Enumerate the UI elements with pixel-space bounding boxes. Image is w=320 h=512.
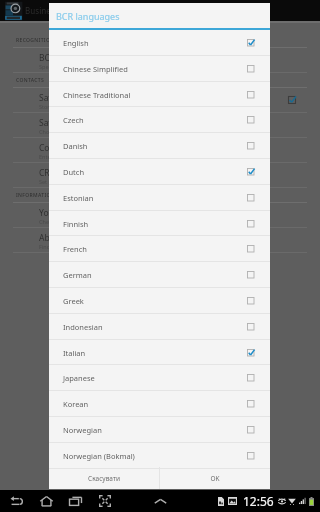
staticText: BCR languages <box>56 10 120 22</box>
staticText: English <box>63 38 247 48</box>
button[interactable]: Show notifications <box>149 490 171 512</box>
staticText: Indonesian <box>63 322 247 332</box>
staticText: Chinese Simplified <box>63 64 247 74</box>
staticText: RECOGNITION <box>16 37 55 44</box>
staticText: Choose when to save images <box>39 128 114 135</box>
button[interactable]: French <box>49 236 270 262</box>
staticText: Czech <box>63 115 247 125</box>
button[interactable]: Contact fields <box>0 138 320 162</box>
staticText: About <box>39 232 64 244</box>
button[interactable]: Recent apps <box>64 490 86 512</box>
staticText: Set up the CRM connection <box>39 178 109 185</box>
button[interactable]: Japanese <box>49 365 270 391</box>
button[interactable]: Greek <box>49 288 270 314</box>
staticText: INFORMATION <box>16 192 56 199</box>
staticText: Store recognized contacts <box>39 103 106 110</box>
staticText: 12:56 <box>243 493 274 509</box>
staticText: Specify recognition languages <box>39 63 117 70</box>
button[interactable]: English <box>49 30 270 56</box>
staticText: BCR languages <box>39 52 99 64</box>
staticText: German <box>63 270 247 280</box>
staticText: Chinese Traditional <box>63 90 247 100</box>
button[interactable]: OK <box>160 467 270 489</box>
staticText: French <box>63 244 247 254</box>
staticText: Greek <box>63 296 247 306</box>
button[interactable]: Estonian <box>49 185 270 211</box>
button[interactable]: Norwegian (Bokmal) <box>49 443 270 469</box>
button[interactable]: Korean <box>49 391 270 417</box>
button[interactable]: CRM settings <box>0 163 320 187</box>
staticText: OK <box>210 474 220 483</box>
button[interactable]: Chinese Traditional <box>49 82 270 108</box>
button[interactable]: Norwegian <box>49 417 270 443</box>
button[interactable]: Save card image <box>0 113 320 137</box>
button[interactable]: Chinese Simplified <box>49 56 270 82</box>
button[interactable]: Danish <box>49 133 270 159</box>
staticText: Norwegian <box>63 425 247 435</box>
button[interactable]: Home <box>35 490 57 512</box>
staticText: Скасувати <box>88 474 120 483</box>
button[interactable]: About <box>0 228 320 252</box>
button[interactable]: Finnish <box>49 211 270 237</box>
staticText: Contact fields <box>39 142 94 154</box>
staticText: Business <box>25 5 59 16</box>
staticText: Enter default field types <box>39 153 101 160</box>
button[interactable]: Save contacts to <box>0 88 320 112</box>
staticText: Finnish <box>63 219 247 229</box>
button[interactable]: Скасувати <box>49 467 159 489</box>
button[interactable]: German <box>49 262 270 288</box>
button[interactable]: Screenshot <box>94 490 116 512</box>
staticText: Italian <box>63 348 247 358</box>
button[interactable]: Indonesian <box>49 314 270 340</box>
button[interactable]: BCR languages <box>0 48 320 72</box>
staticText: Save contacts to <box>39 92 104 104</box>
staticText: Save card image <box>39 117 105 129</box>
staticText: Norwegian (Bokmal) <box>63 451 247 461</box>
button[interactable]: Your account <box>0 203 320 227</box>
staticText: Japanese <box>63 373 247 383</box>
staticText: Your account <box>39 207 92 219</box>
staticText: Check your balance <box>39 218 90 225</box>
staticText: Find out the app version <box>39 243 102 250</box>
staticText: CRM settings <box>39 167 92 179</box>
button[interactable]: Dutch <box>49 159 270 185</box>
button[interactable]: Italian <box>49 340 270 366</box>
staticText: Dutch <box>63 167 247 177</box>
staticText: Estonian <box>63 193 247 203</box>
button[interactable]: Back <box>5 490 27 512</box>
staticText: Korean <box>63 399 247 409</box>
staticText: CONTACTS <box>16 77 45 84</box>
button[interactable]: Czech <box>49 107 270 133</box>
staticText: Danish <box>63 141 247 151</box>
